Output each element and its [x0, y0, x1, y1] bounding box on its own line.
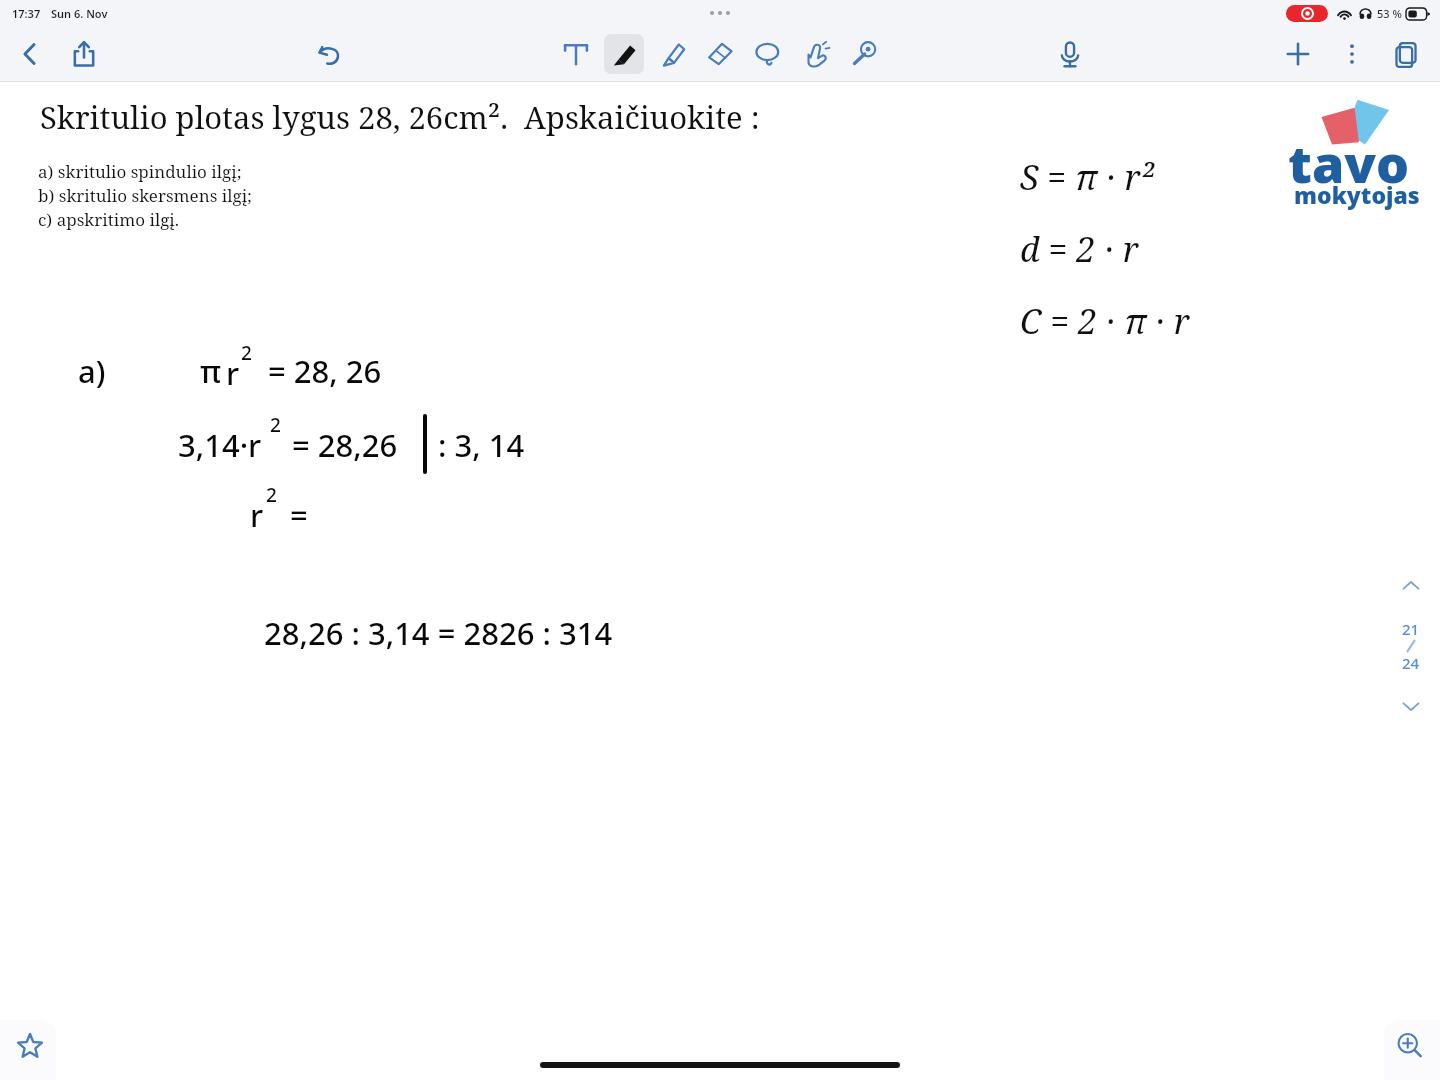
staticText: 2	[241, 340, 252, 366]
staticText: S = π · r²	[1020, 154, 1155, 200]
staticText: r	[250, 494, 264, 536]
button[interactable]: Lasso select	[748, 34, 788, 74]
button[interactable]: Add page	[1278, 34, 1318, 74]
button[interactable]: Undo	[309, 34, 349, 74]
staticText: 2	[266, 482, 277, 508]
button[interactable]: Page 21 of 24	[1402, 619, 1420, 673]
button[interactable]: Highlighter	[652, 34, 692, 74]
staticText: a)	[78, 350, 106, 392]
staticText: 24	[1402, 653, 1420, 673]
staticText: Sun 6. Nov	[51, 6, 108, 21]
button[interactable]: Bookmark	[0, 1020, 56, 1080]
staticText: b) skritulio skersmens ilgį;	[38, 184, 252, 207]
button[interactable]: Text tool	[556, 34, 596, 74]
staticText: r	[226, 352, 240, 394]
button[interactable]: Pen tool	[604, 34, 644, 74]
staticText: : 3, 14	[438, 424, 525, 466]
staticText: a) skritulio spindulio ilgį;	[38, 160, 242, 183]
button[interactable]: Back	[10, 34, 50, 74]
button[interactable]: Pages	[1386, 34, 1426, 74]
button[interactable]: Record audio	[1050, 34, 1090, 74]
staticText: d = 2 · r	[1020, 226, 1139, 272]
button[interactable]: Hand tool	[796, 34, 836, 74]
staticText: 17:37	[12, 6, 41, 21]
button[interactable]: Zoom in	[1384, 1020, 1440, 1080]
staticText: 3,14·r	[178, 424, 262, 466]
button[interactable]: Shape tool	[844, 34, 884, 74]
button[interactable]: Eraser	[700, 34, 740, 74]
staticText: mokytojas	[1294, 179, 1420, 210]
staticText: 28,26 : 3,14 = 2826 : 314	[264, 612, 613, 654]
staticText: 53 %	[1377, 6, 1402, 21]
staticText: 21	[1402, 619, 1420, 639]
staticText: = 28, 26	[268, 350, 382, 392]
button[interactable]: More options	[1332, 34, 1372, 74]
staticText: C = 2 · π · r	[1020, 298, 1190, 344]
staticText: c) apskritimo ilgį.	[38, 208, 179, 231]
staticText: π	[200, 350, 222, 392]
button[interactable]: Share	[64, 34, 104, 74]
staticText: tavo	[1288, 127, 1410, 198]
staticText: = 28,26	[292, 424, 398, 466]
staticText: 2	[270, 412, 281, 438]
staticText: Skritulio plotas lygus 28, 26cm². Apskai…	[40, 96, 760, 138]
staticText: =	[290, 494, 308, 536]
button[interactable]: Next page	[1394, 689, 1428, 723]
button[interactable]: Previous page	[1394, 569, 1428, 603]
